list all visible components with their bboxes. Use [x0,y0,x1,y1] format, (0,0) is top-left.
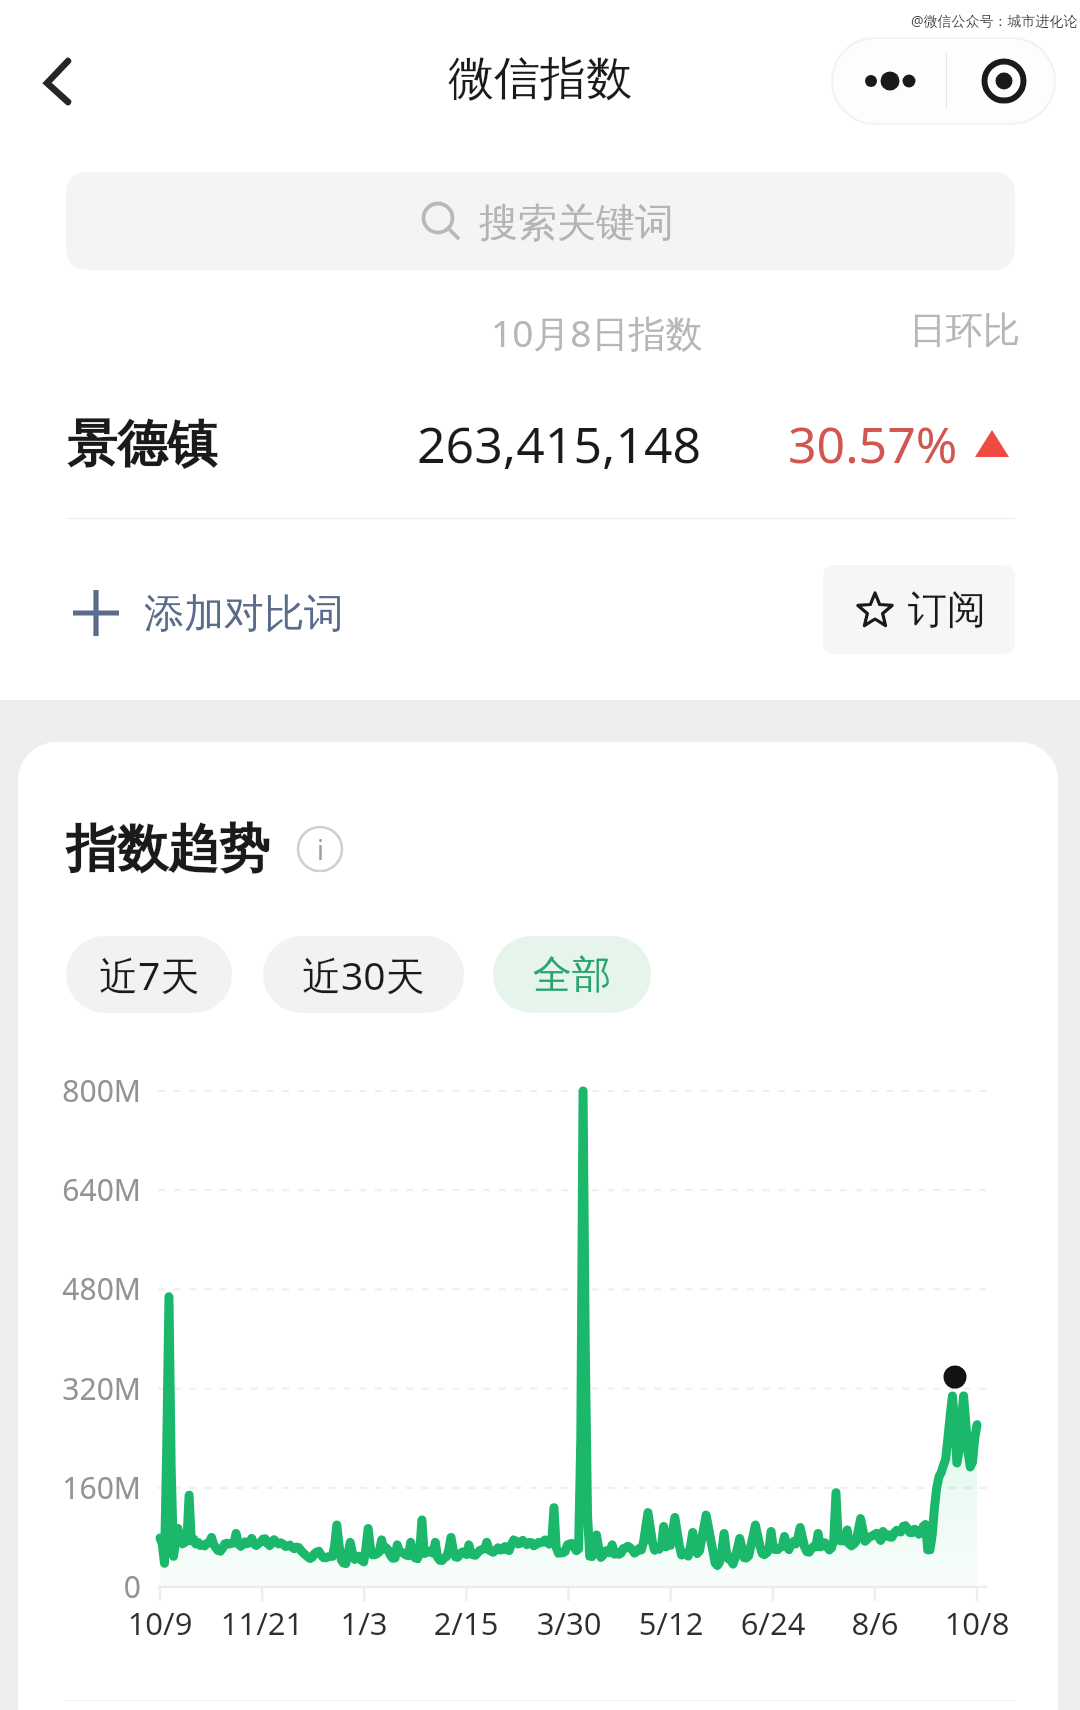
staticText: 添加对比词 [144,588,344,638]
staticText: 30.57% [788,410,958,478]
staticText: 5/12 [611,1602,731,1644]
staticText: 320M [41,1368,141,1409]
staticText: i [317,831,324,868]
staticText: 近7天 [99,948,200,1001]
staticText: @微信公众号：城市进化论 [911,11,1078,30]
staticText: 640M [41,1169,141,1210]
staticText: 10月8日指数 [491,307,703,358]
staticText: 10/8 [917,1602,1037,1644]
staticText: 近30天 [302,948,425,1001]
staticText: 480M [41,1268,141,1309]
staticText: 10/9 [100,1602,220,1644]
staticText: 订阅 [908,585,986,634]
button[interactable]: More options [833,39,946,123]
staticText: 搜索关键词 [479,198,674,247]
staticText: 8/6 [815,1602,935,1644]
staticText: 0 [41,1566,141,1607]
staticText: 微信指数 [448,50,632,106]
button[interactable]: 添加对比词 [66,575,344,651]
staticText: 800M [41,1070,141,1111]
button[interactable]: 搜索关键词 [66,172,1015,270]
staticText: 263,415,148 [417,410,702,478]
staticText: 160M [41,1467,141,1508]
staticText: 2/15 [406,1602,526,1644]
button[interactable]: 全部 [493,936,651,1013]
button[interactable]: Close mini program [947,39,1054,123]
button[interactable]: 近30天 [263,936,464,1013]
staticText: 3/30 [509,1602,629,1644]
button[interactable]: Back [13,38,103,128]
staticText: 全部 [533,950,611,999]
button[interactable]: 订阅 [823,565,1015,654]
staticText: 11/21 [202,1602,322,1644]
staticText: 日环比 [909,307,1020,354]
button[interactable]: 近7天 [66,936,232,1013]
staticText: 景德镇 [67,413,217,476]
staticText: 指数趋势 [66,817,270,881]
staticText: 1/3 [304,1602,424,1644]
staticText: 6/24 [713,1602,833,1644]
button[interactable]: Information [296,825,344,873]
